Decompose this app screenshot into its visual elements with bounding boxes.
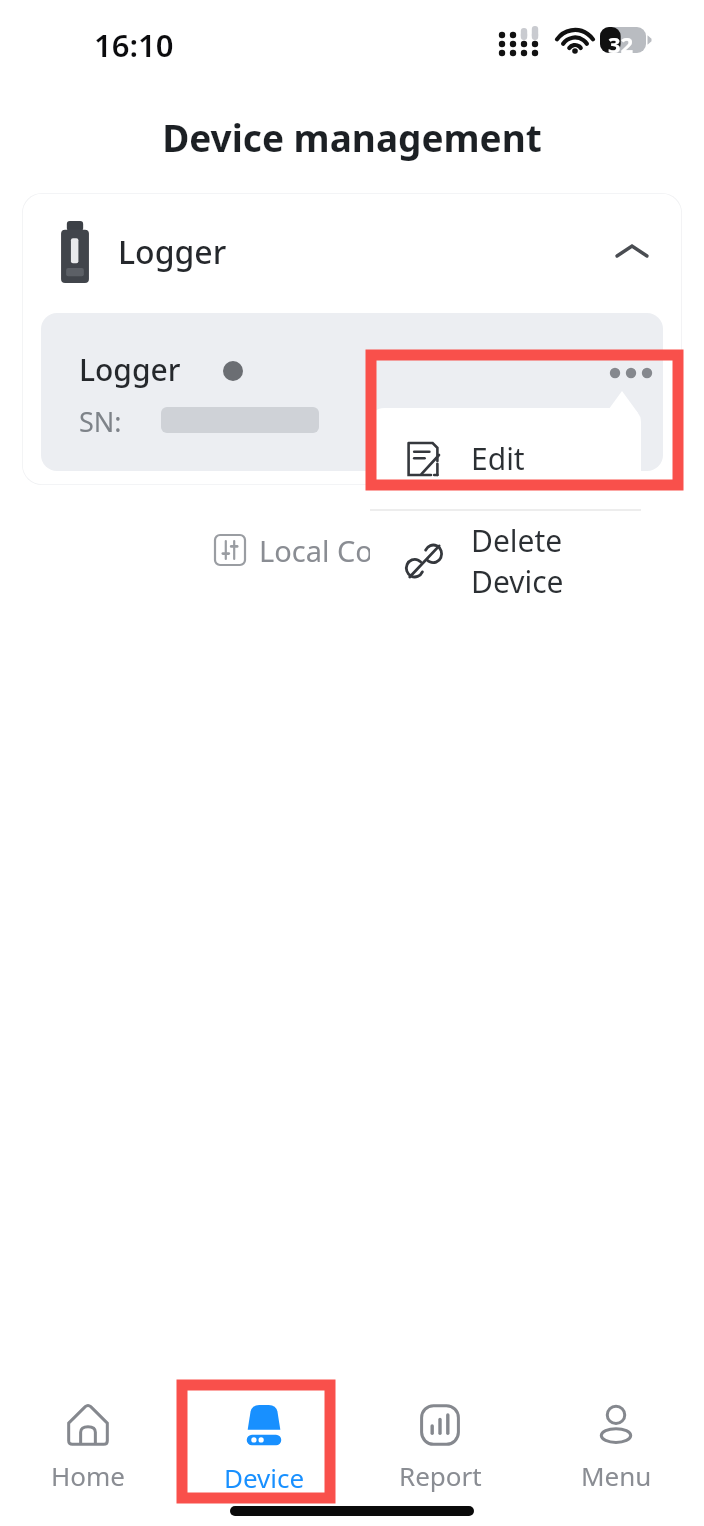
staticText: Logger xyxy=(118,230,227,274)
button[interactable]: More options xyxy=(601,351,661,395)
button[interactable]: Menu xyxy=(528,1376,704,1516)
staticText: Device xyxy=(224,1460,305,1495)
other: Collapse xyxy=(612,232,652,272)
staticText: Logger xyxy=(79,349,181,390)
button[interactable]: Home xyxy=(0,1376,176,1516)
button[interactable]: Logger xyxy=(41,313,663,471)
button[interactable]: Logger xyxy=(22,193,682,311)
staticText: Report xyxy=(399,1458,482,1493)
staticText: Home xyxy=(51,1458,125,1493)
staticText: Local Configuration xyxy=(259,531,526,570)
button[interactable]: Local Configuration xyxy=(215,526,526,574)
button[interactable]: Device xyxy=(176,1376,352,1516)
staticText: Menu xyxy=(581,1458,652,1493)
staticText: 32 xyxy=(608,29,634,59)
staticText: Edit xyxy=(471,438,525,479)
staticText: Device management xyxy=(0,112,704,162)
button[interactable]: Edit xyxy=(370,408,641,509)
staticText: SN: xyxy=(79,403,122,440)
staticText: Delete Device xyxy=(471,520,641,602)
button[interactable]: Delete Device xyxy=(370,511,641,611)
button[interactable]: Report xyxy=(352,1376,528,1516)
staticText: 16:10 xyxy=(94,24,174,66)
